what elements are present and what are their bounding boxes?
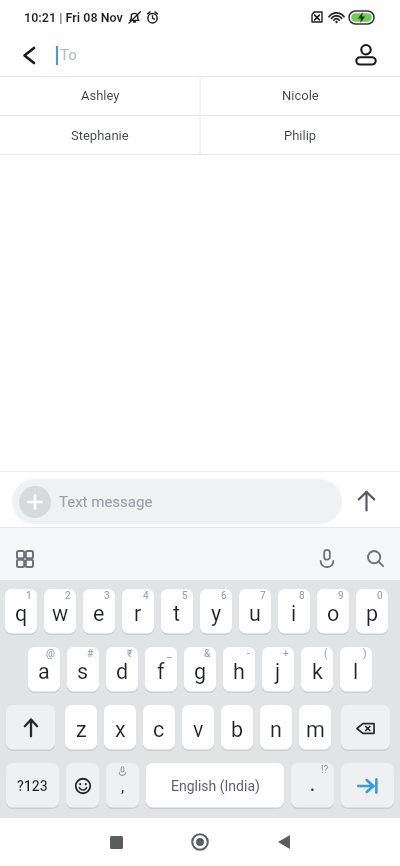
button[interactable] (304, 536, 350, 580)
button[interactable]: d (106, 647, 138, 693)
staticText: + (283, 648, 289, 660)
staticText: _ (167, 648, 172, 660)
button[interactable]: b (221, 705, 253, 751)
button[interactable]: Ashley (0, 76, 200, 115)
staticText: !? (321, 764, 329, 776)
button[interactable] (0, 536, 48, 580)
staticText: g (194, 659, 207, 684)
button[interactable] (341, 763, 394, 809)
button[interactable]: y (200, 589, 232, 635)
button[interactable]: English (India) (146, 763, 284, 809)
staticText: n (270, 717, 282, 742)
button[interactable]: v (182, 705, 214, 751)
button[interactable] (92, 818, 140, 866)
button[interactable] (14, 40, 44, 70)
staticText: 4 (143, 590, 149, 602)
button[interactable]: z (65, 705, 97, 751)
staticText: Ashley (81, 88, 120, 103)
button[interactable]: To (56, 34, 77, 76)
button[interactable]: c (143, 705, 175, 751)
staticText: x (115, 717, 126, 742)
button[interactable]: u (239, 589, 271, 635)
button[interactable]: . (291, 763, 334, 809)
staticText: 5 (182, 590, 188, 602)
staticText: y (211, 601, 222, 626)
staticText: d (116, 659, 129, 684)
staticText: h (233, 659, 245, 684)
button[interactable]: Text message (12, 479, 342, 524)
button[interactable] (352, 536, 398, 580)
button[interactable]: a (28, 647, 60, 693)
button[interactable]: e (83, 589, 115, 635)
button[interactable]: w (44, 589, 76, 635)
button[interactable]: r (122, 589, 154, 635)
button[interactable] (6, 705, 55, 751)
button[interactable] (66, 763, 99, 809)
button[interactable]: g (184, 647, 216, 693)
staticText: Text message (59, 493, 153, 511)
staticText: r (134, 601, 142, 626)
staticText: p (366, 601, 379, 626)
button[interactable] (341, 705, 390, 751)
button[interactable]: Philip (200, 115, 400, 155)
staticText: 9 (338, 590, 344, 602)
staticText: z (76, 717, 87, 742)
button[interactable]: m (299, 705, 331, 751)
button[interactable]: Nicole (200, 76, 400, 115)
button[interactable] (342, 475, 391, 527)
staticText: Nicole (282, 88, 319, 103)
staticText: i (291, 601, 297, 626)
staticText: English (India) (171, 778, 260, 794)
staticText: j (275, 659, 281, 684)
button[interactable]: j (262, 647, 294, 693)
button[interactable] (176, 818, 224, 866)
staticText: k (312, 659, 323, 684)
button[interactable]: q (5, 589, 37, 635)
staticText: ) (363, 648, 367, 660)
button[interactable] (19, 486, 51, 518)
button[interactable]: ?123 (6, 763, 59, 809)
button[interactable]: Stephanie (0, 115, 200, 155)
button[interactable]: l (340, 647, 372, 693)
button[interactable]: p (356, 589, 388, 635)
staticText: u (249, 601, 261, 626)
staticText: c (153, 717, 165, 742)
staticText: f (157, 659, 165, 684)
staticText: - (247, 648, 250, 660)
staticText: e (93, 601, 105, 626)
staticText: 2 (65, 590, 71, 602)
staticText: b (231, 717, 244, 742)
staticText: 7 (260, 590, 266, 602)
button[interactable]: t (161, 589, 193, 635)
staticText: ( (324, 648, 328, 660)
button[interactable]: , (106, 763, 139, 809)
staticText: q (15, 601, 28, 626)
staticText: . (310, 775, 315, 795)
staticText: m (306, 717, 325, 742)
staticText: a (38, 659, 50, 684)
button[interactable]: o (317, 589, 349, 635)
staticText: , (121, 776, 125, 796)
staticText: @ (46, 648, 55, 660)
staticText: 8 (299, 590, 305, 602)
staticText: 3 (104, 590, 110, 602)
button[interactable]: i (278, 589, 310, 635)
staticText: Philip (284, 128, 317, 143)
button[interactable]: h (223, 647, 255, 693)
staticText: & (204, 648, 211, 660)
button[interactable]: f (145, 647, 177, 693)
button[interactable]: s (67, 647, 99, 693)
button[interactable] (260, 818, 308, 866)
staticText: 6 (221, 590, 227, 602)
staticText: s (77, 659, 89, 684)
staticText: ?123 (17, 778, 48, 794)
button[interactable]: k (301, 647, 333, 693)
button[interactable]: x (104, 705, 136, 751)
staticText: Stephanie (71, 128, 129, 143)
staticText: 0 (377, 590, 383, 602)
button[interactable]: n (260, 705, 292, 751)
staticText: # (87, 648, 94, 660)
staticText: v (193, 717, 204, 742)
staticText: o (327, 601, 340, 626)
button[interactable] (350, 39, 382, 71)
